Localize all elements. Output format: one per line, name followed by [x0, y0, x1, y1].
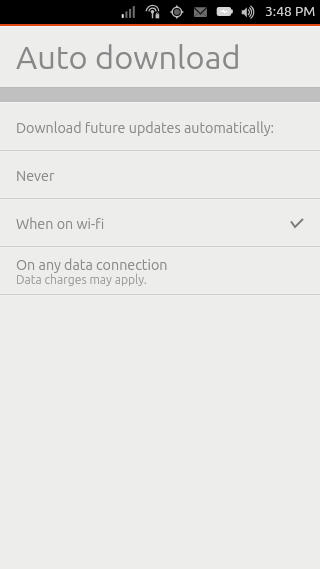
staticText: When on wi-fi	[16, 216, 105, 232]
button[interactable]: Download future updates automatically:	[0, 103, 320, 151]
button[interactable]: On any data connection	[0, 247, 320, 295]
staticText: Data charges may apply.	[16, 273, 147, 287]
staticText: 3:48 PM	[265, 3, 316, 18]
staticText: Download future updates automatically:	[16, 120, 275, 136]
button[interactable]: Never	[0, 151, 320, 199]
staticText: Never	[16, 168, 55, 184]
staticText: Auto download	[16, 39, 241, 76]
button[interactable]: When on wi-fi	[0, 199, 320, 247]
staticText: On any data connection	[16, 257, 168, 273]
